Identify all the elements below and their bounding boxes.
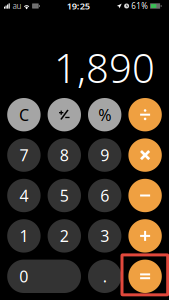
button[interactable]: 5 (48, 179, 81, 212)
button[interactable]: . (88, 260, 121, 293)
staticText: . (103, 266, 107, 287)
button[interactable]: 1 (7, 219, 41, 253)
button[interactable]: 3 (88, 219, 121, 253)
staticText: 8 (60, 144, 69, 166)
staticText: 9 (100, 144, 109, 166)
staticText: 19:25 (67, 0, 90, 12)
button[interactable]: Minus (128, 179, 162, 212)
staticText: 5 (60, 185, 69, 206)
staticText: % (98, 104, 111, 125)
button[interactable]: 7 (7, 138, 41, 172)
staticText: 3 (100, 225, 109, 246)
button[interactable]: Equals (128, 260, 162, 293)
staticText: 6 (100, 185, 109, 206)
button[interactable]: % (88, 98, 121, 131)
button[interactable]: 8 (48, 138, 81, 172)
button[interactable]: 0 (7, 260, 81, 293)
staticText: 2 (60, 225, 69, 246)
button[interactable]: Divide (128, 98, 162, 131)
staticText: 1 (19, 225, 28, 246)
button[interactable]: Plus minus (48, 98, 81, 131)
staticText: 61% (131, 1, 148, 11)
button[interactable]: 4 (7, 179, 41, 212)
button[interactable]: 9 (88, 138, 121, 172)
staticText: C (19, 104, 29, 125)
staticText: 7 (19, 144, 28, 166)
button[interactable]: Plus (128, 219, 162, 253)
staticText: 0 (19, 266, 28, 287)
button[interactable]: Multiply (128, 138, 162, 172)
staticText: au (12, 1, 21, 11)
button[interactable]: 2 (48, 219, 81, 253)
staticText: 4 (19, 185, 28, 206)
button[interactable]: 6 (88, 179, 121, 212)
button[interactable]: C (7, 98, 41, 131)
staticText: 1,890 (54, 41, 155, 94)
